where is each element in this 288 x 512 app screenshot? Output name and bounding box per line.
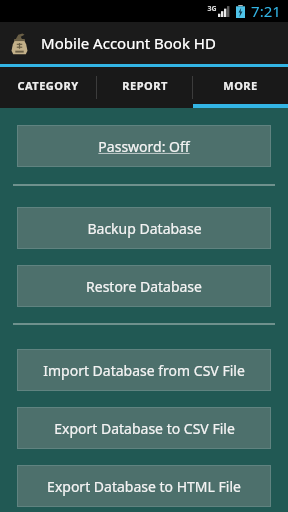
button[interactable]: MORE xyxy=(193,67,288,108)
staticText: CATEGORY xyxy=(17,78,79,93)
button[interactable]: Export Database to CSV File xyxy=(18,408,270,448)
button[interactable]: REPORT xyxy=(97,67,192,108)
staticText: Password: Off xyxy=(98,137,190,156)
button[interactable]: CATEGORY xyxy=(0,67,96,108)
button[interactable]: Import Database from CSV File xyxy=(18,350,270,390)
staticText: Import Database from CSV File xyxy=(43,361,245,380)
staticText: Backup Database xyxy=(87,219,202,238)
staticText: Restore Database xyxy=(86,277,202,296)
button[interactable]: Backup Database xyxy=(18,208,270,248)
other: App icon xyxy=(9,31,30,55)
staticText: Mobile Account Book HD xyxy=(41,33,216,53)
button[interactable]: Password: Off xyxy=(18,126,270,166)
staticText: Export Database to CSV File xyxy=(54,419,235,438)
staticText: MORE xyxy=(223,78,258,93)
staticText: REPORT xyxy=(122,78,168,93)
staticText: 7:21 xyxy=(251,1,281,21)
button[interactable]: Export Database to HTML File xyxy=(18,466,270,506)
button[interactable]: Restore Database xyxy=(18,266,270,306)
staticText: 3G xyxy=(207,4,217,14)
staticText: Export Database to HTML File xyxy=(47,477,241,496)
